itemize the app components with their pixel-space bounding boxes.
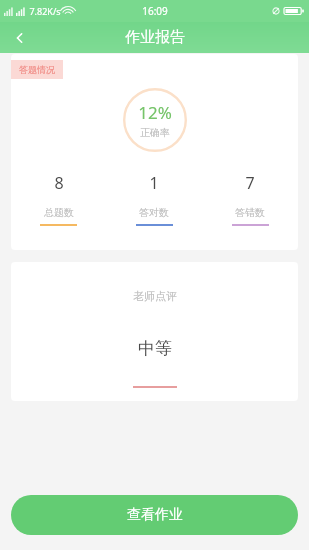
- staticText: 16:09: [142, 4, 168, 18]
- button[interactable]: 8: [11, 172, 106, 226]
- staticText: 查看作业: [127, 506, 183, 524]
- staticText: 老师点评: [133, 289, 177, 303]
- staticText: 7: [245, 172, 255, 194]
- staticText: 1: [149, 172, 159, 194]
- staticText: 答题情况: [19, 64, 55, 75]
- button[interactable]: 7: [202, 172, 298, 226]
- staticText: 12%: [138, 101, 172, 124]
- button[interactable]: Back: [0, 22, 40, 53]
- staticText: 8: [54, 172, 64, 194]
- staticText: 答错数: [235, 206, 265, 219]
- staticText: 中等: [138, 338, 172, 359]
- staticText: 答对数: [139, 206, 169, 219]
- staticText: 总题数: [44, 206, 74, 219]
- staticText: 作业报告: [125, 28, 185, 47]
- button[interactable]: 1: [106, 172, 202, 226]
- staticText: 正确率: [140, 126, 170, 139]
- staticText: 7.82K/s: [29, 5, 61, 17]
- button[interactable]: 查看作业: [11, 495, 298, 535]
